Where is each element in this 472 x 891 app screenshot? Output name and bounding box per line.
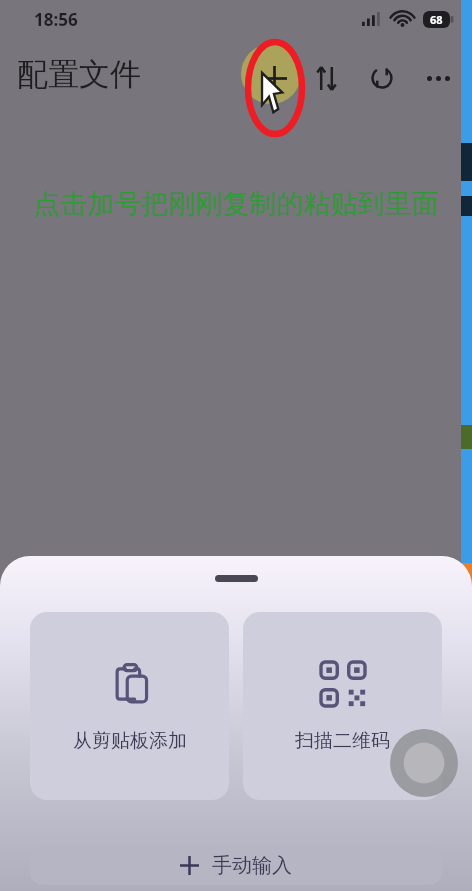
staticText: 18:56 [34, 8, 78, 31]
button[interactable]: Sort [303, 55, 349, 101]
staticText: 配置文件 [17, 55, 141, 94]
staticText: 手动输入 [212, 853, 292, 878]
button[interactable]: Add profile [251, 55, 297, 101]
staticText: 扫描二维码 [295, 729, 390, 753]
button[interactable]: 从剪贴板添加 [30, 612, 229, 800]
staticText: 从剪贴板添加 [73, 729, 187, 753]
staticText: 68 [430, 12, 443, 27]
button[interactable]: Refresh [359, 55, 405, 101]
button[interactable]: 扫描二维码 [243, 612, 442, 800]
button[interactable]: More options [415, 55, 461, 101]
button[interactable]: 手动输入 [30, 845, 442, 885]
staticText: 点击加号把刚刚复制的粘贴到里面 [25, 187, 447, 221]
